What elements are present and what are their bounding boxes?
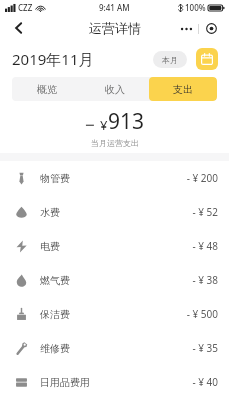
button[interactable]: Back — [6, 15, 32, 41]
button[interactable]: 概览 — [12, 77, 81, 101]
button[interactable]: 电费 — [0, 229, 229, 263]
button[interactable]: 本月 — [153, 51, 187, 68]
staticText: 收入 — [105, 83, 125, 96]
button[interactable]: 燃气费 — [0, 263, 229, 297]
staticText: 维修费 — [40, 342, 70, 355]
staticText: − — [85, 113, 100, 136]
button[interactable]: Target — [199, 20, 223, 37]
button[interactable]: 维修费 — [0, 331, 229, 365]
staticText: CZZ — [18, 2, 33, 13]
staticText: 电费 — [40, 240, 60, 253]
staticText: - ¥ 200 — [186, 171, 218, 185]
button[interactable]: Calendar — [196, 48, 218, 70]
staticText: 支出 — [173, 83, 193, 96]
staticText: 日用品费用 — [40, 376, 90, 389]
staticText: 燃气费 — [40, 274, 70, 287]
staticText: - ¥ 35 — [192, 341, 218, 355]
button[interactable]: More — [174, 20, 198, 37]
staticText: 保洁费 — [40, 308, 70, 321]
staticText: 9:41 AM — [99, 2, 130, 13]
staticText: ¥ — [100, 116, 108, 134]
staticText: 水费 — [40, 206, 60, 219]
staticText: - ¥ 500 — [186, 307, 218, 321]
button[interactable]: 支出 — [149, 77, 217, 101]
staticText: - ¥ 48 — [192, 239, 218, 253]
staticText: - ¥ 40 — [192, 375, 218, 389]
button[interactable]: 收入 — [81, 77, 149, 101]
staticText: 概览 — [37, 83, 57, 96]
staticText: 物管费 — [40, 172, 70, 185]
staticText: 运营详情 — [89, 20, 141, 36]
staticText: 2019年11月 — [12, 49, 94, 69]
staticText: 913 — [108, 107, 145, 136]
button[interactable]: 物管费 — [0, 161, 229, 195]
staticText: 100% — [185, 2, 206, 13]
staticText: 当月运营支出 — [91, 138, 139, 148]
staticText: - ¥ 52 — [192, 205, 218, 219]
button[interactable]: 水费 — [0, 195, 229, 229]
button[interactable]: 保洁费 — [0, 297, 229, 331]
button[interactable]: 日用品费用 — [0, 365, 229, 399]
staticText: - ¥ 38 — [192, 273, 218, 287]
staticText: 本月 — [162, 55, 178, 65]
